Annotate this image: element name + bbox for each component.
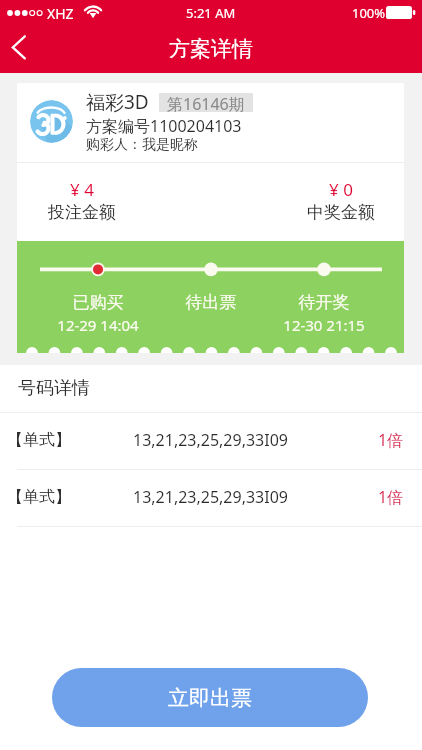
staticText: 13,21,23,25,29,33I09 [133,486,288,508]
staticText: 号码详情 [18,377,90,400]
staticText: 方案编号1100204103 [86,115,242,137]
staticText: 13,21,23,25,29,33I09 [133,429,288,451]
staticText: 福彩3D [86,89,149,115]
staticText: 【单式】 [7,487,71,507]
staticText: 待出票 [141,292,281,313]
staticText: ¥ 0 [271,178,411,201]
staticText: 已购买 [28,292,168,313]
button[interactable]: 【单式】 [0,470,422,526]
staticText: 12-30 21:15 [254,315,394,335]
staticText: 中奖金额 [271,202,411,223]
staticText: 1倍 [378,486,404,508]
button[interactable]: 立即出票 [52,668,368,727]
staticText: 5:21 AM [186,4,236,22]
staticText: 1倍 [378,429,404,451]
staticText: 方案详情 [169,36,253,62]
staticText: 第16146期 [167,93,245,112]
staticText: 12-29 14:04 [28,315,168,335]
staticText: XHZ [47,4,74,23]
staticText: 【单式】 [7,430,71,450]
button[interactable]: Back [0,26,40,70]
staticText: 立即出票 [168,685,252,711]
staticText: ¥ 4 [12,178,152,201]
staticText: 投注金额 [12,202,152,223]
staticText: 100% [352,4,386,22]
button[interactable]: 【单式】 [0,413,422,469]
staticText: 购彩人：我是昵称 [86,136,198,154]
staticText: 待开奖 [254,292,394,313]
